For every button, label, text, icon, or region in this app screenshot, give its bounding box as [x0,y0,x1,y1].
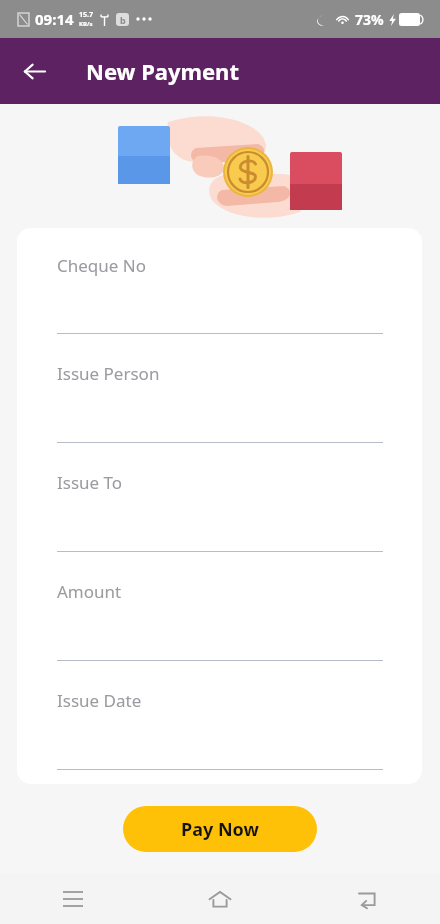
staticText: Issue To [57,471,123,494]
button[interactable]: Amount [57,552,383,661]
button[interactable]: Back [343,875,391,923]
staticText: 73% [355,10,384,29]
staticText: 09:14 [35,9,74,29]
button[interactable]: Back [14,51,54,91]
staticText: Cheque No [57,254,147,277]
staticText: Pay Now [181,817,259,842]
staticText: 15.7 [79,10,93,20]
staticText: New Payment [86,56,239,86]
staticText: b [120,14,126,26]
staticText: Issue Date [57,689,142,712]
button[interactable]: Pay Now [123,806,317,852]
button[interactable]: Issue Date [57,661,383,770]
staticText: Amount [57,580,122,603]
button[interactable]: Issue To [57,443,383,552]
staticText: KB/s [79,20,93,28]
staticText: Issue Person [57,362,160,385]
button[interactable]: Home [196,875,244,923]
button[interactable]: Issue Person [57,334,383,443]
button[interactable]: Cheque No [57,252,383,334]
button[interactable]: Recents [49,875,97,923]
